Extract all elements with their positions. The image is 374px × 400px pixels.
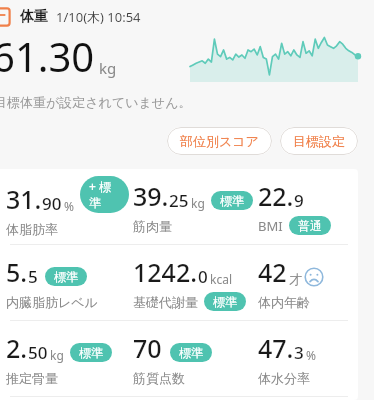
staticText: 1242. [133, 255, 198, 289]
staticText: 3 [294, 341, 304, 364]
button[interactable]: 標準 [170, 343, 212, 362]
button[interactable]: 47. [254, 321, 358, 396]
staticText: 体脂肪率 [6, 221, 58, 237]
staticText: 目標体重が設定されていません。 [0, 94, 192, 110]
staticText: 31. [6, 182, 42, 216]
staticText: 70 [133, 331, 162, 365]
staticText: 標準 [220, 193, 244, 208]
staticText: 22. [258, 179, 294, 213]
staticText: 50 [28, 341, 48, 364]
button[interactable]: 標準 [211, 191, 253, 210]
staticText: 5 [28, 265, 38, 288]
button[interactable]: 1242. [129, 245, 254, 320]
staticText: + 標準 [89, 178, 120, 211]
button[interactable]: 標準 [204, 292, 246, 311]
staticText: kcal [210, 271, 232, 287]
button[interactable]: 体重アイコン [0, 7, 11, 27]
button[interactable]: 22. [254, 169, 358, 244]
staticText: 9 [294, 189, 304, 212]
button[interactable]: 目標設定 [280, 127, 358, 155]
button[interactable]: 5. [2, 245, 129, 320]
staticText: 0 [198, 265, 208, 288]
staticText: 普通 [298, 218, 322, 233]
staticText: 39. [133, 179, 169, 213]
button[interactable]: 標準 [45, 267, 87, 286]
button[interactable]: 2. [2, 321, 129, 396]
staticText: kg [99, 58, 117, 78]
staticText: 42 [258, 255, 287, 289]
button[interactable]: + 標準 [80, 176, 129, 213]
button[interactable]: 70 [129, 321, 254, 396]
staticText: 標準 [213, 294, 237, 309]
staticText: 基礎代謝量 [133, 294, 198, 310]
staticText: 標準 [54, 269, 78, 284]
staticText: 25 [169, 189, 189, 212]
staticText: 2. [6, 331, 28, 365]
staticText: 1/10(木) 10:54 [56, 8, 141, 26]
staticText: 筋質点数 [133, 370, 185, 386]
staticText: 47. [258, 331, 294, 365]
button[interactable]: 39. [129, 169, 254, 244]
staticText: 才 [289, 271, 302, 287]
staticText: 部位別スコア [180, 133, 259, 149]
staticText: % [64, 198, 74, 214]
staticText: 目標設定 [293, 133, 345, 149]
staticText: 標準 [179, 345, 203, 360]
staticText: 体重 [20, 8, 48, 26]
button[interactable]: 42 [254, 245, 358, 320]
staticText: 体内年齢 [258, 294, 310, 310]
staticText: % [306, 347, 316, 363]
button[interactable]: 31. [2, 169, 129, 244]
button[interactable]: 部位別スコア [167, 127, 272, 155]
staticText: 内臓脂肪レベル [6, 294, 98, 310]
staticText: 61.30 [0, 29, 95, 83]
staticText: kg [50, 347, 64, 363]
staticText: kg [191, 195, 205, 211]
staticText: 推定骨量 [6, 370, 58, 386]
staticText: BMI [258, 217, 283, 235]
staticText: 標準 [79, 345, 103, 360]
staticText: 体水分率 [258, 370, 310, 386]
staticText: 90 [42, 192, 62, 215]
button[interactable]: 標準 [70, 343, 112, 362]
button[interactable]: 普通 [289, 216, 331, 235]
staticText: 5. [6, 255, 28, 289]
staticText: 筋肉量 [133, 218, 172, 234]
